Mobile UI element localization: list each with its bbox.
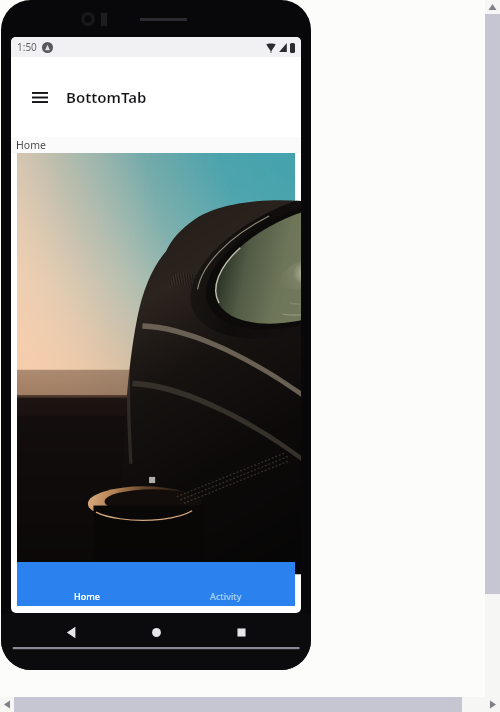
staticText: BottomTab: [66, 87, 147, 107]
button[interactable]: Back: [56, 617, 86, 647]
button[interactable]: Open navigation menu: [23, 80, 57, 114]
staticText: Home: [74, 590, 100, 602]
button[interactable]: Activity: [156, 562, 295, 606]
staticText: Activity: [210, 590, 242, 602]
staticText: Home: [16, 138, 46, 152]
button[interactable]: Home: [141, 617, 171, 647]
button[interactable]: Home: [17, 562, 156, 606]
staticText: 1:50: [17, 40, 37, 54]
button[interactable]: Recents: [226, 617, 256, 647]
